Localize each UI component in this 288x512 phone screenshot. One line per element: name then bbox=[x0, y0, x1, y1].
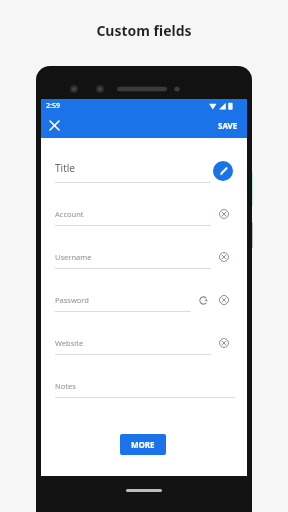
button[interactable]: Close bbox=[44, 115, 64, 135]
staticText: Password bbox=[55, 295, 89, 305]
staticText: 2:59 bbox=[46, 101, 60, 111]
button[interactable]: Edit bbox=[213, 161, 233, 181]
button[interactable]: Account bbox=[55, 204, 211, 224]
button[interactable]: Website bbox=[55, 333, 211, 353]
staticText: Username bbox=[55, 252, 92, 262]
staticText: Account bbox=[55, 209, 84, 219]
button[interactable]: Username bbox=[55, 247, 211, 267]
staticText: Custom fields bbox=[96, 21, 192, 40]
button[interactable]: Clear Password bbox=[216, 292, 232, 308]
button[interactable]: SAVE bbox=[213, 116, 243, 134]
button[interactable]: Clear Account bbox=[216, 206, 232, 222]
button[interactable]: Title bbox=[55, 157, 211, 179]
button[interactable]: Clear Username bbox=[216, 249, 232, 265]
button[interactable]: Clear Website bbox=[216, 335, 232, 351]
button[interactable]: Notes bbox=[55, 376, 235, 396]
staticText: MORE bbox=[131, 439, 155, 450]
staticText: Title bbox=[55, 161, 75, 175]
button[interactable]: Password bbox=[55, 290, 191, 310]
staticText: Website bbox=[55, 338, 84, 348]
button[interactable]: MORE bbox=[120, 434, 166, 455]
staticText: SAVE bbox=[218, 120, 238, 131]
button[interactable]: Generate password bbox=[195, 292, 211, 308]
staticText: Notes bbox=[55, 381, 76, 391]
